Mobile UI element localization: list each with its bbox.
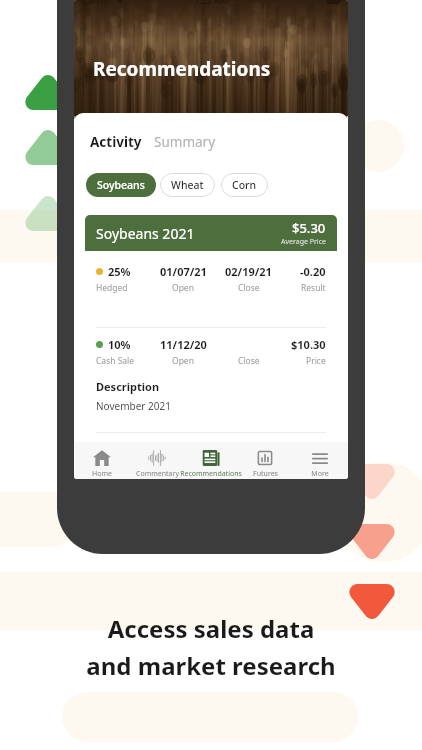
button[interactable]: Commentary: [130, 442, 184, 479]
button[interactable]: Home: [75, 442, 129, 479]
staticText: 1:22 AM: [194, 0, 229, 6]
staticText: Recommendations: [93, 56, 271, 82]
button[interactable]: Wheat: [160, 173, 215, 197]
staticText: Summary: [154, 133, 216, 151]
staticText: Soybeans 2021: [96, 224, 195, 243]
staticText: Hedged: [96, 282, 128, 294]
staticText: Close: [238, 355, 260, 367]
button[interactable]: Corn: [221, 173, 268, 197]
staticText: Average Price: [281, 237, 326, 247]
staticText: Description: [96, 379, 160, 394]
staticText: Close: [238, 282, 260, 294]
staticText: Open: [172, 282, 194, 294]
staticText: Home: [92, 469, 112, 479]
staticText: Carrier: [82, 0, 112, 6]
button[interactable]: Activity: [90, 133, 142, 151]
staticText: Soybeans: [97, 178, 145, 192]
staticText: November 2021: [96, 399, 171, 413]
staticText: Wheat: [171, 178, 204, 192]
staticText: Price: [306, 355, 326, 367]
button[interactable]: Recommendations: [184, 442, 238, 479]
staticText: 10%: [108, 337, 131, 352]
staticText: $10.30: [291, 337, 326, 352]
button[interactable]: Futures: [238, 442, 292, 479]
staticText: Result: [301, 282, 326, 294]
staticText: -0.20: [300, 264, 326, 279]
staticText: 11/12/20: [160, 337, 207, 352]
staticText: Activity: [90, 133, 142, 151]
staticText: Open: [172, 355, 194, 367]
staticText: 02/19/21: [225, 264, 272, 279]
button[interactable]: Summary: [154, 133, 216, 151]
staticText: More: [311, 469, 329, 479]
button[interactable]: Soybeans: [86, 173, 156, 197]
staticText: $5.30: [292, 219, 326, 237]
staticText: Cash Sale: [96, 355, 135, 367]
staticText: Commentary: [136, 469, 179, 479]
staticText: Recommendations: [180, 469, 242, 479]
staticText: Futures: [253, 469, 278, 479]
staticText: 01/07/21: [160, 264, 207, 279]
staticText: 25%: [108, 264, 131, 279]
staticText: Access sales data and market research: [0, 612, 422, 682]
staticText: Corn: [232, 178, 257, 192]
button[interactable]: More: [293, 442, 347, 479]
